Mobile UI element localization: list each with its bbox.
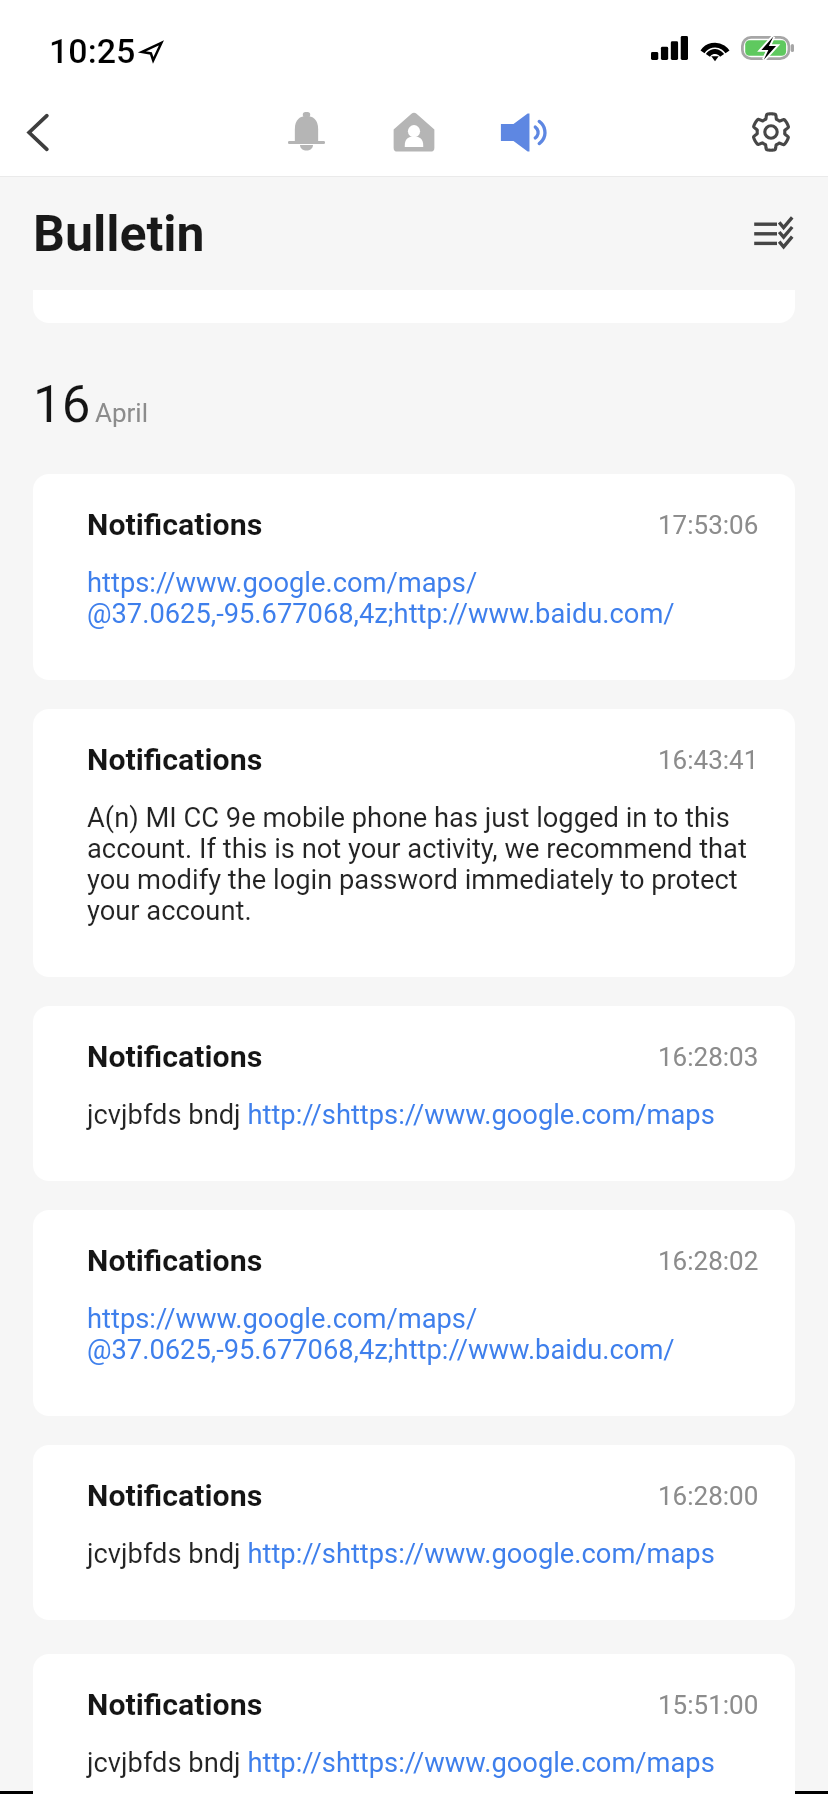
staticText: Notifications: [87, 1243, 263, 1279]
staticText: 16:28:00: [658, 1481, 759, 1511]
button[interactable]: Announcements: [484, 94, 560, 170]
staticText: 16:43:41: [658, 745, 759, 775]
button[interactable]: Notifications: [33, 474, 795, 680]
button[interactable]: Settings: [733, 94, 809, 170]
staticText: jcvjbfds bndj http://shttps://www.google…: [87, 1100, 715, 1131]
button[interactable]: Home: [376, 94, 452, 170]
staticText: Notifications: [87, 742, 263, 778]
staticText: https://www.google.com/maps/ @37.0625,-9…: [87, 568, 675, 630]
staticText: Notifications: [87, 507, 263, 543]
button[interactable]: Notifications: [33, 709, 795, 977]
staticText: Notifications: [87, 1478, 263, 1514]
button[interactable]: Notifications: [33, 1445, 795, 1620]
staticText: jcvjbfds bndj http://shttps://www.google…: [87, 1748, 715, 1779]
button[interactable]: Back: [0, 94, 76, 170]
staticText: 15:51:00: [658, 1690, 759, 1720]
button[interactable]: Notifications: [268, 94, 344, 170]
staticText: 17:53:06: [658, 510, 759, 540]
staticText: 16:28:03: [658, 1042, 759, 1072]
staticText: jcvjbfds bndj http://shttps://www.google…: [87, 1539, 715, 1570]
staticText: A(n) MI CC 9e mobile phone has just logg…: [87, 803, 759, 927]
staticText: 16: [33, 375, 91, 435]
staticText: April: [95, 398, 149, 428]
button[interactable]: Mark all as read: [740, 201, 806, 267]
staticText: Bulletin: [33, 205, 205, 264]
staticText: Notifications: [87, 1039, 263, 1075]
button[interactable]: Notifications: [33, 1210, 795, 1416]
button[interactable]: Notifications: [33, 1654, 795, 1794]
button[interactable]: Notifications: [33, 1006, 795, 1181]
staticText: 16:28:02: [658, 1246, 759, 1276]
staticText: https://www.google.com/maps/ @37.0625,-9…: [87, 1304, 675, 1366]
staticText: Notifications: [87, 1687, 263, 1723]
staticText: 10:25: [49, 31, 136, 71]
